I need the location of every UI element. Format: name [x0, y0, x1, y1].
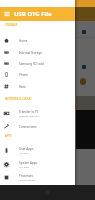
staticText: Samsung SD card: [19, 62, 44, 66]
staticText: System Apps: [19, 161, 38, 165]
staticText: 211 apps: [19, 165, 30, 168]
staticText: manage remotely: [19, 114, 39, 117]
button[interactable]: Open navigation menu: [0, 7, 14, 21]
staticText: STORAGE: [5, 23, 18, 27]
staticText: Connections: [19, 125, 37, 129]
staticText: Phone: [19, 73, 29, 77]
staticText: APPS: [5, 134, 12, 138]
staticText: User Apps: [19, 147, 34, 151]
staticText: Internal Storage: [19, 51, 42, 55]
button[interactable]: Processes: [0, 170, 75, 184]
button[interactable]: Samsung SD card: [0, 58, 75, 69]
button[interactable]: Root: [0, 81, 75, 92]
staticText: Processes: [19, 174, 33, 178]
staticText: NETWORK & CLOUD: [5, 97, 32, 101]
button[interactable]: Internal Storage: [0, 47, 75, 58]
button[interactable]: System Apps: [0, 157, 75, 171]
button[interactable]: Connections: [0, 121, 75, 132]
button[interactable]: Phone: [0, 69, 75, 80]
staticText: 120 apps: [19, 151, 30, 154]
button[interactable]: Home: [0, 35, 75, 46]
button[interactable]: User Apps: [0, 143, 75, 157]
staticText: Transfer to PC: [19, 110, 39, 114]
button[interactable]: Transfer to PC: [0, 106, 75, 120]
staticText: Root: [19, 85, 26, 89]
staticText: Home: [19, 39, 28, 43]
staticText: USB OTG File: [14, 10, 52, 18]
staticText: 205 processes: [19, 178, 35, 181]
